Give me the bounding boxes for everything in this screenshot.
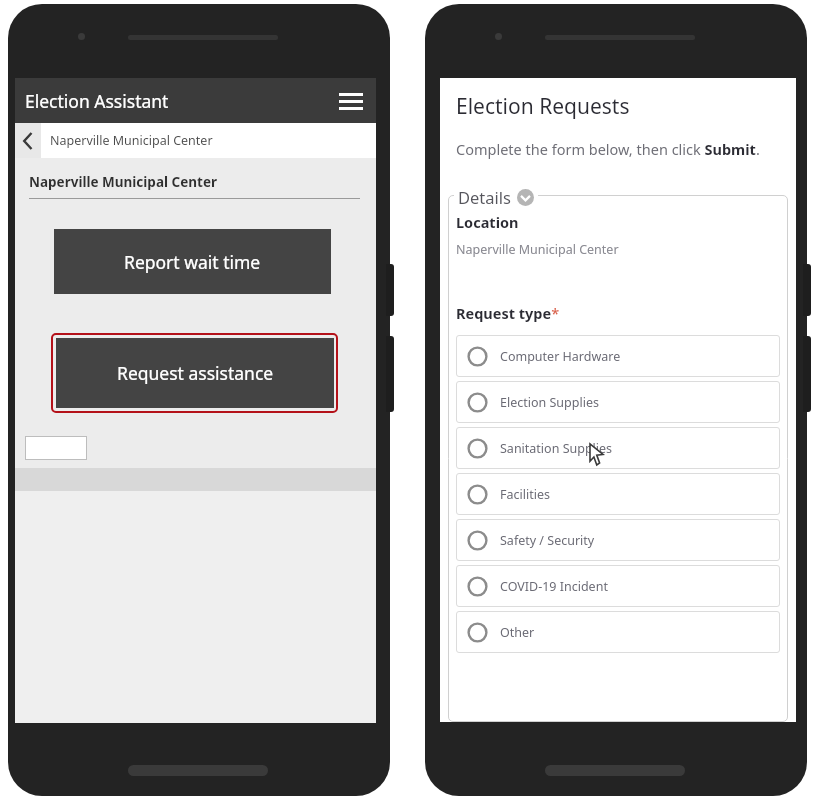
button[interactable]: Request assistance (51, 333, 338, 413)
staticText: Facilities (500, 486, 550, 503)
staticText: Computer Hardware (500, 348, 621, 365)
staticText: Safety / Security (500, 532, 595, 549)
staticText: Complete the form below, then click Subm… (456, 139, 760, 159)
button[interactable]: Back (15, 123, 41, 158)
staticText: Request type* (456, 303, 560, 323)
staticText: Naperville Municipal Center (456, 241, 619, 258)
button[interactable] (25, 436, 87, 460)
staticText: Report wait time (124, 250, 261, 274)
staticText: Naperville Municipal Center (50, 132, 213, 149)
staticText: Election Supplies (500, 394, 599, 411)
staticText: Election Assistant (25, 89, 169, 113)
button[interactable]: Facilities (456, 473, 780, 515)
staticText: Sanitation Supplies (500, 440, 613, 457)
button[interactable]: Computer Hardware (456, 335, 780, 377)
button[interactable]: COVID-19 Incident (456, 565, 780, 607)
button[interactable]: Other (456, 611, 780, 653)
button[interactable]: Report wait time (54, 229, 331, 294)
button[interactable]: Collapse Details (517, 189, 534, 206)
staticText: Election Requests (456, 92, 630, 121)
button[interactable]: Election Supplies (456, 381, 780, 423)
button[interactable]: Safety / Security (456, 519, 780, 561)
button[interactable]: Sanitation Supplies (456, 427, 780, 469)
button[interactable]: Menu (334, 84, 368, 118)
staticText: Other (500, 624, 535, 641)
staticText: Naperville Municipal Center (29, 173, 217, 191)
staticText: Details (458, 186, 511, 208)
staticText: Request assistance (117, 361, 274, 385)
staticText: COVID-19 Incident (500, 578, 608, 595)
staticText: Location (456, 212, 519, 232)
